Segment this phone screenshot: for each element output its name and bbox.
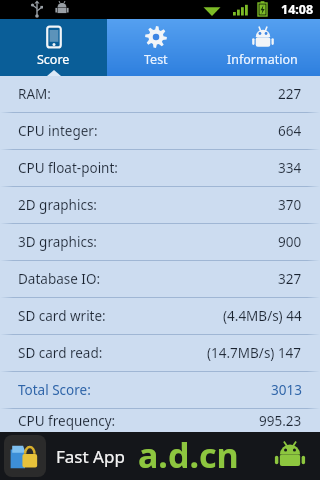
button[interactable]: SD card write:: [0, 298, 320, 334]
staticText: 900: [278, 233, 302, 251]
staticText: 664: [278, 122, 302, 140]
staticText: 3013: [271, 381, 302, 399]
staticText: Test: [144, 51, 168, 68]
button[interactable]: Database IO:: [0, 261, 320, 297]
staticText: Total Score:: [18, 381, 91, 399]
staticText: CPU frequency:: [18, 412, 116, 430]
staticText: RAM:: [18, 85, 51, 103]
button[interactable]: 3D graphics:: [0, 224, 320, 260]
button[interactable]: Fast App Lock: [0, 432, 320, 480]
button[interactable]: CPU frequency:: [0, 409, 320, 432]
button[interactable]: CPU integer:: [0, 113, 320, 149]
staticText: (14.7MB/s) 147: [207, 344, 302, 362]
staticText: 995.23: [259, 412, 302, 430]
button[interactable]: RAM:: [0, 76, 320, 112]
staticText: (4.4MB/s) 44: [223, 307, 302, 325]
staticText: 334: [278, 159, 302, 177]
button[interactable]: 2D graphics:: [0, 187, 320, 223]
staticText: 14:08: [281, 1, 314, 18]
staticText: CPU integer:: [18, 122, 98, 140]
staticText: CPU float-point:: [18, 159, 118, 177]
button[interactable]: Information: [205, 19, 320, 76]
button[interactable]: Score: [0, 19, 107, 76]
staticText: Score: [37, 51, 70, 68]
other: Fast App Lock: [4, 435, 46, 477]
button[interactable]: SD card read:: [0, 335, 320, 371]
button[interactable]: Total Score:: [0, 372, 320, 408]
staticText: 2D graphics:: [18, 196, 97, 214]
staticText: SD card write:: [18, 307, 106, 325]
staticText: Fast App: [56, 445, 125, 468]
button[interactable]: CPU float-point:: [0, 150, 320, 186]
staticText: 370: [278, 196, 302, 214]
staticText: a.d.cn: [138, 432, 239, 478]
staticText: Information: [227, 51, 298, 68]
staticText: 3D graphics:: [18, 233, 97, 251]
staticText: 227: [278, 85, 302, 103]
staticText: Database IO:: [18, 270, 101, 288]
button[interactable]: Test: [107, 19, 205, 76]
staticText: 327: [278, 270, 302, 288]
staticText: SD card read:: [18, 344, 103, 362]
